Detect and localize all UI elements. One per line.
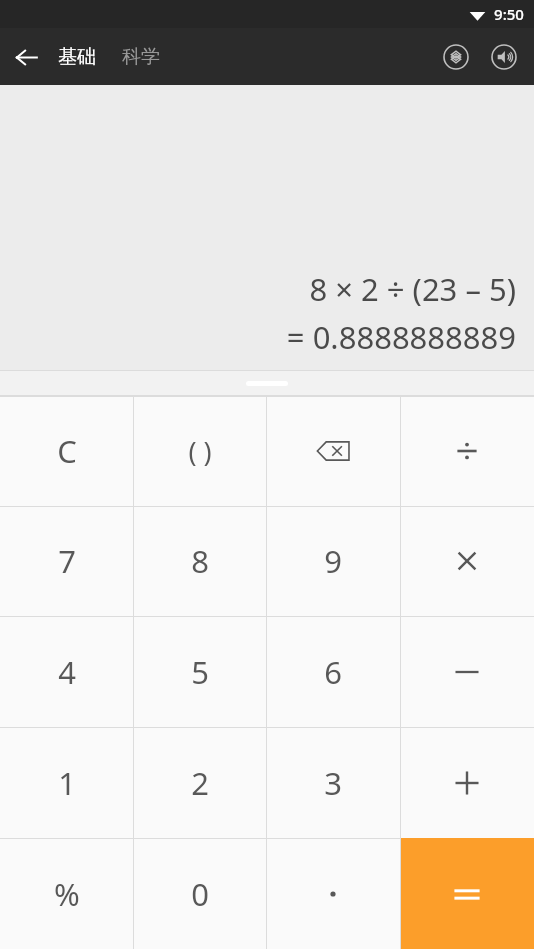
button[interactable]: 9	[266, 506, 400, 616]
button[interactable]: Equals	[400, 838, 534, 949]
staticText: 5	[191, 651, 209, 693]
button[interactable]: ( )	[133, 396, 266, 506]
staticText: 0	[191, 873, 209, 915]
staticText: 3	[324, 762, 342, 804]
button[interactable]: 6	[266, 616, 400, 727]
staticText: 基础	[58, 45, 96, 69]
staticText: 科学	[122, 45, 160, 69]
button[interactable]: C	[0, 396, 133, 506]
button[interactable]: 7	[0, 506, 133, 616]
button[interactable]: 科学	[116, 39, 166, 75]
staticText: 6	[324, 651, 342, 693]
button[interactable]	[400, 506, 534, 616]
button[interactable]: Drag handle	[240, 375, 294, 392]
button[interactable]: 5	[133, 616, 266, 727]
staticText: 9	[324, 540, 342, 582]
staticText: 9:50	[494, 4, 524, 24]
button[interactable]: 1	[0, 727, 133, 838]
staticText: 7	[58, 540, 76, 582]
button[interactable]: 8	[133, 506, 266, 616]
button[interactable]: Sound	[480, 33, 528, 81]
button[interactable]: 2	[133, 727, 266, 838]
staticText: 1	[58, 762, 76, 804]
staticText: 8	[191, 540, 209, 582]
button[interactable]	[400, 616, 534, 727]
button[interactable]: 4	[0, 616, 133, 727]
staticText: C	[57, 430, 77, 472]
staticText: = 0.8888888889	[286, 316, 516, 358]
staticText: ( )	[188, 433, 212, 470]
button[interactable]: 基础	[52, 39, 102, 75]
button[interactable]	[266, 838, 400, 949]
button[interactable]: Delete	[266, 396, 400, 506]
staticText: 4	[58, 651, 76, 693]
button[interactable]: 0	[133, 838, 266, 949]
button[interactable]: 3	[266, 727, 400, 838]
button[interactable]: Back	[0, 31, 52, 83]
staticText: 2	[191, 762, 209, 804]
button[interactable]	[400, 727, 534, 838]
button[interactable]: %	[0, 838, 133, 949]
staticText: 8 × 2 ÷ (23 – 5)	[309, 268, 516, 310]
button[interactable]: History	[432, 33, 480, 81]
button[interactable]	[400, 396, 534, 506]
staticText: %	[54, 873, 80, 915]
